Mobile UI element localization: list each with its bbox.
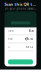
staticText: a@b.co [24, 37, 33, 41]
staticText: ID [7, 45, 10, 49]
staticText: Scan this QR to continue [4, 2, 36, 7]
staticText: Alex [28, 29, 33, 33]
staticText: Email [7, 37, 13, 41]
staticText: on your phone camera app [4, 7, 36, 10]
button[interactable] [8, 59, 33, 64]
staticText: Name [7, 29, 14, 33]
staticText: 8412 [25, 45, 33, 49]
